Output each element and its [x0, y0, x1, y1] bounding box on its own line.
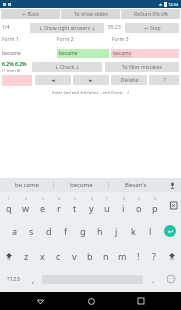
button[interactable]: ?: [149, 75, 179, 85]
button[interactable]: l: [142, 218, 159, 244]
staticText: become: [70, 181, 93, 189]
staticText: ►: [89, 77, 93, 83]
button[interactable]: To filter mistakes: [105, 62, 179, 72]
staticText: ?123: [7, 275, 20, 283]
button[interactable]: z: [18, 244, 34, 268]
button[interactable]: j: [108, 218, 125, 244]
button[interactable]: Emoji: [161, 268, 181, 290]
button[interactable]: ,: [26, 268, 40, 290]
staticText: j: [115, 225, 118, 237]
staticText: 2: [25, 197, 27, 201]
button[interactable]: g: [74, 218, 91, 244]
button[interactable]: Delete: [111, 75, 147, 85]
button[interactable]: k: [125, 218, 142, 244]
staticText: !: [137, 250, 140, 262]
staticText: w: [22, 202, 30, 214]
staticText: become: [2, 50, 21, 57]
staticText: ◄: [51, 77, 55, 83]
button[interactable]: 2: [17, 192, 34, 218]
button[interactable]: become: [54, 178, 108, 192]
staticText: 05:23: [108, 24, 121, 31]
staticText: ↓ Show right answers ↓: [38, 25, 96, 32]
staticText: ← Back: [22, 11, 39, 18]
button[interactable]: To show slides: [61, 9, 120, 19]
button[interactable]: x: [34, 244, 50, 268]
staticText: o: [136, 202, 142, 214]
staticText: d: [46, 225, 52, 237]
button[interactable]: n: [98, 244, 114, 268]
staticText: (1 from 8): [2, 68, 21, 73]
button[interactable]: Shift: [162, 244, 181, 268]
button[interactable]: m: [114, 244, 130, 268]
staticText: ↓ Check ↓: [54, 64, 80, 71]
button[interactable]: Backspace: [163, 192, 181, 218]
staticText: x: [40, 250, 45, 262]
button[interactable]: c: [50, 244, 66, 268]
button[interactable]: b: [82, 244, 98, 268]
button[interactable]: ?: [146, 244, 162, 268]
staticText: To filter mistakes: [122, 64, 162, 71]
button[interactable]: 3: [34, 192, 51, 218]
button[interactable]: s: [23, 218, 40, 244]
button[interactable]: Bevan's: [109, 178, 163, 192]
button[interactable]: ◄: [35, 75, 71, 85]
button[interactable]: becams: [111, 49, 179, 58]
button[interactable]: d: [40, 218, 57, 244]
button[interactable]: be came: [0, 178, 53, 192]
staticText: e: [40, 202, 46, 214]
button[interactable]: 1: [0, 192, 17, 218]
button[interactable]: 8: [115, 192, 131, 218]
staticText: Form 2: [57, 36, 74, 43]
button[interactable]: ↓ Check ↓: [32, 62, 102, 72]
button[interactable]: 9: [131, 192, 147, 218]
staticText: i: [122, 202, 125, 214]
button[interactable]: 6: [83, 192, 99, 218]
staticText: b: [87, 250, 93, 262]
staticText: l: [149, 225, 152, 237]
button[interactable]: 0: [147, 192, 163, 218]
staticText: Delete: [120, 76, 139, 84]
staticText: 9: [138, 197, 140, 201]
button[interactable]: Enter: [159, 218, 181, 244]
button[interactable]: ►: [73, 75, 109, 85]
button[interactable]: .: [145, 268, 161, 290]
staticText: 0: [154, 197, 156, 201]
staticText: h: [97, 225, 103, 237]
button[interactable]: a: [6, 218, 23, 244]
staticText: g: [80, 225, 86, 237]
staticText: n: [103, 250, 109, 262]
staticText: s: [29, 225, 34, 237]
staticText: 1: [8, 197, 10, 201]
staticText: ?: [152, 250, 156, 262]
staticText: ReStart 0% 0%: [134, 11, 168, 18]
staticText: z: [24, 250, 29, 262]
staticText: 6: [91, 197, 93, 201]
button[interactable]: ← Stop: [125, 23, 179, 33]
staticText: Bevan's: [125, 181, 147, 189]
button[interactable]: ← Back: [1, 9, 60, 19]
button[interactable]: 5: [67, 192, 83, 218]
button[interactable]: ReStart 0% 0%: [121, 9, 180, 19]
button[interactable]: !: [130, 244, 146, 268]
button[interactable]: f: [57, 218, 74, 244]
staticText: v: [72, 250, 77, 262]
button[interactable]: 4: [51, 192, 67, 218]
staticText: p: [152, 202, 158, 214]
button[interactable]: Back: [30, 292, 50, 310]
button[interactable]: ?123: [0, 268, 26, 290]
button[interactable]: Shift: [0, 244, 18, 268]
button[interactable]: 7: [99, 192, 115, 218]
button[interactable]: became: [57, 49, 109, 58]
staticText: To show slides: [74, 11, 108, 18]
button[interactable]: Voice input: [163, 178, 181, 192]
staticText: became: [59, 50, 78, 57]
button[interactable]: h: [91, 218, 108, 244]
button[interactable]: ↓ Show right answers ↓: [30, 23, 104, 33]
button[interactable]: v: [66, 244, 82, 268]
staticText: 7: [106, 197, 108, 201]
button[interactable]: Home: [81, 292, 101, 310]
button[interactable]: Recents: [131, 292, 151, 310]
staticText: ·: [57, 44, 59, 48]
